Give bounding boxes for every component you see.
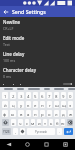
staticText: ч <box>19 120 22 126</box>
button[interactable]: з <box>68 101 73 108</box>
button[interactable]: Edit mode <box>0 33 75 49</box>
button[interactable]: 6 <box>40 92 45 99</box>
staticText: й <box>4 102 7 108</box>
button[interactable]: 8 <box>54 92 59 99</box>
staticText: 4 <box>27 93 30 99</box>
other: Local echo toggle <box>63 83 72 85</box>
button[interactable]: л <box>54 110 59 117</box>
button[interactable]: щ <box>61 101 66 108</box>
button[interactable]: Screenshot <box>56 139 75 150</box>
staticText: б <box>56 120 59 126</box>
staticText: л <box>55 111 58 117</box>
staticText: 5 <box>34 93 37 99</box>
staticText: с <box>26 120 29 126</box>
staticText: CR+LF <box>3 26 14 31</box>
staticText: ы <box>11 111 15 117</box>
staticText: ж <box>69 111 73 117</box>
button[interactable]: у <box>18 101 24 108</box>
button[interactable]: ь <box>49 119 53 126</box>
staticText: д <box>62 111 65 117</box>
button[interactable]: н <box>40 101 45 108</box>
button[interactable]: Recents <box>37 139 56 150</box>
staticText: ц <box>12 102 15 108</box>
button[interactable]: в <box>18 110 24 117</box>
button[interactable]: т <box>43 119 47 126</box>
button[interactable]: Navigate up <box>0 6 11 17</box>
button[interactable]: , <box>13 128 18 135</box>
staticText: ф <box>3 111 7 117</box>
button[interactable]: Local echo <box>0 81 75 87</box>
staticText: 9 <box>62 93 65 99</box>
button[interactable]: Change language <box>20 128 25 135</box>
staticText: е <box>34 102 37 108</box>
button[interactable]: Back <box>0 139 18 150</box>
button[interactable]: д <box>61 110 66 117</box>
button[interactable]: б <box>55 119 59 126</box>
staticText: Line delay <box>3 51 25 57</box>
staticText: и <box>38 120 41 126</box>
button[interactable]: Enter <box>64 128 73 135</box>
staticText: г <box>49 102 51 108</box>
button[interactable]: я <box>11 119 16 126</box>
button[interactable]: 9 <box>61 92 66 99</box>
staticText: р <box>41 111 44 117</box>
staticText: Local echo <box>3 83 26 85</box>
staticText: у <box>20 102 23 108</box>
button[interactable]: ы <box>10 110 16 117</box>
staticText: Character delay <box>3 67 36 73</box>
staticText: 8 <box>55 93 58 99</box>
staticText: ю <box>61 120 65 126</box>
staticText: Text <box>3 42 10 47</box>
staticText: м <box>31 120 35 126</box>
button[interactable]: м <box>31 119 35 126</box>
staticText: о <box>48 111 51 117</box>
button[interactable]: Line delay <box>0 49 75 65</box>
button[interactable]: ю <box>61 119 65 126</box>
button[interactable]: 7 <box>47 92 52 99</box>
button[interactable]: Character delay <box>0 65 75 81</box>
button[interactable]: й <box>2 101 8 108</box>
button[interactable]: 1 <box>2 92 8 99</box>
button[interactable]: ш <box>54 101 59 108</box>
staticText: 3 <box>20 93 23 99</box>
button[interactable]: ?123 <box>2 128 11 135</box>
button[interactable]: к <box>26 101 31 108</box>
staticText: 7 <box>48 93 51 99</box>
button[interactable]: а <box>26 110 31 117</box>
staticText: 6 <box>41 93 44 99</box>
button[interactable]: 2 <box>10 92 16 99</box>
button[interactable]: 3 <box>18 92 24 99</box>
button[interactable]: . <box>57 128 62 135</box>
staticText: в <box>20 111 23 117</box>
staticText: я <box>12 120 15 126</box>
button[interactable]: о <box>47 110 52 117</box>
staticText: п <box>34 111 37 117</box>
button[interactable]: и <box>37 119 41 126</box>
staticText: . <box>59 129 60 134</box>
button[interactable]: е <box>33 101 38 108</box>
button[interactable]: г <box>47 101 52 108</box>
button[interactable]: с <box>25 119 29 126</box>
button[interactable]: п <box>33 110 38 117</box>
staticText: ь <box>50 120 53 126</box>
staticText: Send Settings <box>12 8 46 15</box>
staticText: ?123 <box>3 130 10 134</box>
staticText: ш <box>55 102 59 108</box>
button[interactable]: 0 <box>68 92 73 99</box>
button[interactable]: ч <box>18 119 23 126</box>
button[interactable]: 5 <box>33 92 38 99</box>
button[interactable]: Home <box>18 139 37 150</box>
button[interactable]: ц <box>10 101 16 108</box>
staticText: Edit mode <box>3 35 25 41</box>
button[interactable]: Newline <box>0 17 75 33</box>
button[interactable]: Backspace <box>67 119 73 126</box>
button[interactable]: ж <box>68 110 73 117</box>
button[interactable]: р <box>40 110 45 117</box>
button[interactable]: Русский <box>27 128 55 135</box>
staticText: а <box>27 111 30 117</box>
button[interactable]: ф <box>2 110 8 117</box>
staticText: 1 <box>4 93 7 99</box>
button[interactable]: Shift <box>2 119 9 126</box>
button[interactable]: 4 <box>26 92 31 99</box>
staticText: т <box>44 120 47 126</box>
